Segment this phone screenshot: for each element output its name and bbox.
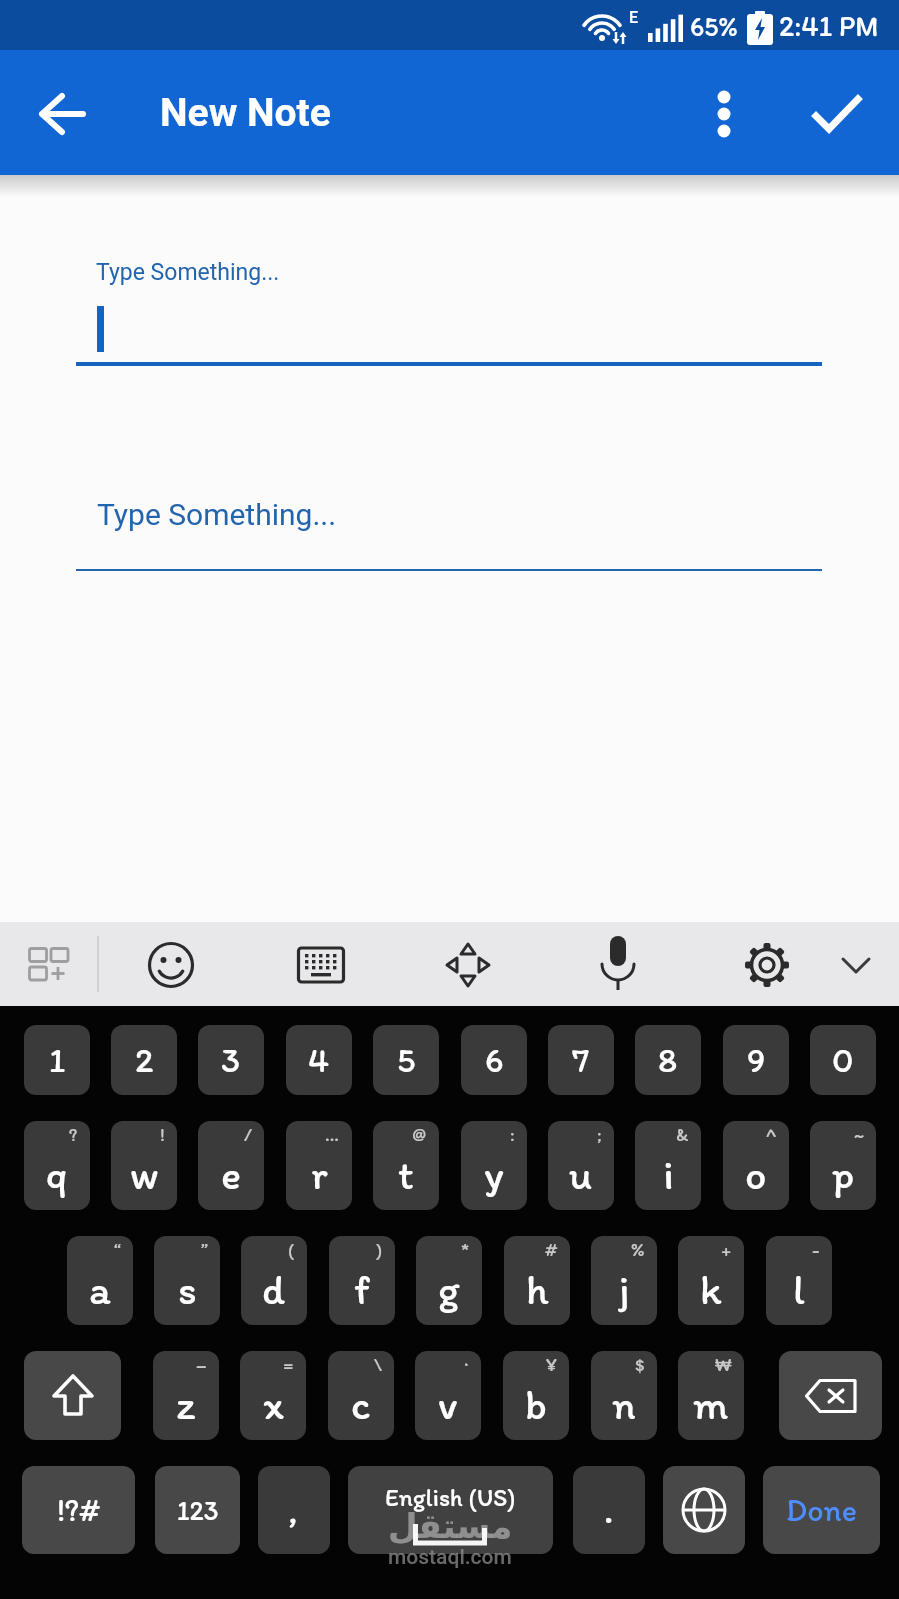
staticText: @ [412,1123,427,1146]
button[interactable]: d [241,1236,307,1325]
staticText: h [526,1264,549,1314]
staticText: . [604,1487,614,1533]
staticText: a [89,1264,111,1314]
staticText: 2:41 PM [779,8,879,43]
button[interactable]: z [153,1351,219,1440]
button[interactable]: 0 [810,1025,876,1095]
staticText: i [663,1149,674,1199]
button[interactable]: Done [763,1466,880,1554]
staticText: d [262,1264,286,1314]
staticText: ~ [854,1123,864,1146]
staticText: mostaql.com [388,1545,512,1570]
button[interactable]: x [240,1351,306,1440]
button[interactable] [806,84,868,144]
button[interactable]: v [415,1351,481,1440]
button[interactable] [663,1466,745,1554]
staticText: c [351,1379,371,1429]
button[interactable]: p [810,1121,876,1210]
staticText: English (US) [385,1482,516,1512]
button[interactable]: y [461,1121,527,1210]
button[interactable]: g [416,1236,482,1325]
button[interactable]: k [678,1236,744,1325]
button[interactable]: u [548,1121,614,1210]
button[interactable] [138,932,204,998]
button[interactable]: o [723,1121,789,1210]
button[interactable]: t [373,1121,439,1210]
button[interactable] [779,1351,882,1440]
staticText: ¥ [546,1353,557,1376]
staticText: v [438,1379,458,1429]
button[interactable]: r [286,1121,352,1210]
button[interactable] [734,932,800,998]
staticText: s [178,1264,197,1314]
staticText: 123 [177,1494,219,1526]
button[interactable]: 3 [198,1025,264,1095]
staticText: n [612,1379,636,1429]
staticText: z [176,1379,196,1429]
button[interactable]: 2 [111,1025,177,1095]
button[interactable]: !?# [22,1466,135,1554]
staticText: · [464,1353,469,1376]
button[interactable]: b [503,1351,569,1440]
button[interactable]: q [24,1121,90,1210]
staticText: “ [114,1238,121,1261]
button[interactable]: i [635,1121,701,1210]
staticText: k [700,1264,722,1314]
staticText: u [569,1149,593,1199]
button[interactable]: m [678,1351,744,1440]
button[interactable]: e [198,1121,264,1210]
staticText: r [311,1149,328,1199]
button[interactable]: English (US) [348,1466,553,1554]
button[interactable]: 4 [286,1025,352,1095]
staticText: p [832,1149,855,1199]
button[interactable] [435,932,501,998]
staticText: $ [635,1353,645,1376]
staticText: % [631,1238,645,1261]
staticText: , [289,1487,299,1533]
button[interactable]: 9 [723,1025,789,1095]
button[interactable]: 1 [24,1025,90,1095]
button[interactable]: h [504,1236,570,1325]
staticText: ) [376,1238,383,1261]
staticText: * [461,1238,470,1261]
staticText: 7 [572,1039,590,1081]
button[interactable]: w [111,1121,177,1210]
staticText: ? [69,1123,78,1146]
staticText: g [438,1264,460,1314]
staticText: New Note [160,90,331,136]
button[interactable] [830,940,882,992]
button[interactable] [288,932,354,998]
button[interactable] [30,82,94,146]
button[interactable]: l [766,1236,832,1325]
staticText: 9 [747,1039,766,1081]
button[interactable]: 8 [635,1025,701,1095]
button[interactable]: 123 [155,1466,240,1554]
staticText: f [354,1264,370,1314]
button[interactable]: c [328,1351,394,1440]
button[interactable] [585,930,651,1000]
button[interactable]: s [154,1236,220,1325]
staticText: مستقل [388,1506,513,1546]
button[interactable]: f [329,1236,395,1325]
staticText: ” [201,1238,208,1261]
button[interactable]: . [573,1466,645,1554]
staticText: !?# [57,1491,101,1529]
staticText: : [510,1123,515,1146]
staticText: ₩ [715,1353,732,1376]
button[interactable]: j [591,1236,657,1325]
button[interactable]: n [591,1351,657,1440]
staticText: \ [374,1353,382,1376]
button[interactable]: , [258,1466,330,1554]
button[interactable]: 5 [373,1025,439,1095]
staticText: m [693,1379,729,1429]
button[interactable]: a [67,1236,133,1325]
button[interactable]: 6 [461,1025,527,1095]
staticText: 1 [49,1039,66,1081]
staticText: o [745,1149,767,1199]
staticText: 2 [135,1039,154,1081]
button[interactable] [15,931,81,997]
button[interactable] [694,84,754,144]
button[interactable]: 7 [548,1025,614,1095]
button[interactable] [24,1351,121,1440]
staticText: q [46,1149,68,1199]
